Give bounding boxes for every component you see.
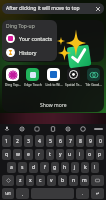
staticText: 4: [38, 138, 41, 145]
button[interactable]: v: [47, 175, 56, 186]
button[interactable]: 2: [13, 135, 22, 147]
button[interactable]: b: [58, 175, 67, 186]
button[interactable]: m: [80, 175, 89, 186]
staticText: Edge Touch: [24, 83, 42, 87]
staticText: b: [61, 177, 65, 184]
button[interactable]: i: [76, 149, 84, 160]
staticText: .: [82, 191, 84, 197]
button[interactable]: Emoji: [64, 125, 72, 133]
staticText: z: [19, 177, 22, 184]
staticText: ↵: [96, 191, 100, 196]
button[interactable]: 5: [46, 135, 54, 147]
button[interactable]: 6: [56, 135, 64, 147]
button[interactable]: p: [96, 149, 104, 160]
staticText: Spatial Te…: [65, 83, 82, 87]
staticText: g: [53, 164, 57, 171]
staticText: Show more: [40, 102, 67, 109]
button[interactable]: Show more: [2, 98, 104, 112]
button[interactable]: j: [71, 162, 79, 173]
button[interactable]: Tile Good…: [84, 68, 103, 87]
button[interactable]: 9: [86, 135, 94, 147]
staticText: u: [68, 151, 72, 158]
button[interactable]: Clipboard: [49, 125, 57, 133]
staticText: 7: [69, 138, 72, 145]
staticText: History: [19, 49, 37, 56]
staticText: l: [94, 164, 96, 171]
button[interactable]: d: [29, 162, 38, 173]
button[interactable]: Shift: [2, 175, 14, 186]
button[interactable]: 0: [96, 135, 104, 147]
staticText: 6: [59, 138, 62, 145]
button[interactable]: Link to Wi…: [44, 68, 63, 87]
button[interactable]: x: [26, 175, 34, 186]
button[interactable]: 4: [35, 135, 44, 147]
staticText: x: [29, 177, 32, 184]
button[interactable]: n: [69, 175, 78, 186]
button[interactable]: !#1: [2, 188, 14, 199]
staticText: ,: [22, 191, 24, 197]
button[interactable]: History: [2, 45, 57, 59]
button[interactable]: s: [18, 162, 27, 173]
button[interactable]: ,: [16, 188, 29, 199]
button[interactable]: .: [76, 188, 89, 199]
staticText: r: [38, 151, 41, 158]
staticText: After clicking it will move to top: [6, 5, 80, 12]
button[interactable]: 8: [76, 135, 84, 147]
button[interactable]: z: [16, 175, 24, 186]
staticText: c: [39, 177, 42, 184]
staticText: 1: [5, 138, 8, 145]
button[interactable]: w: [13, 149, 22, 160]
staticText: Ding Top-up: [6, 23, 35, 30]
button[interactable]: Backspace: [91, 175, 104, 186]
button[interactable]: After clicking it will move to top: [2, 3, 104, 14]
staticText: i: [79, 151, 81, 158]
button[interactable]: k: [81, 162, 89, 173]
staticText: f: [44, 164, 46, 171]
button[interactable]: u: [66, 149, 74, 160]
button[interactable]: Theme: [79, 125, 87, 133]
staticText: w: [16, 151, 20, 158]
staticText: j: [74, 164, 76, 171]
staticText: k: [84, 164, 87, 171]
button[interactable]: e: [24, 149, 33, 160]
staticText: s: [21, 164, 24, 171]
staticText: 0: [99, 138, 102, 145]
button[interactable]: Spatial Te…: [64, 68, 83, 87]
button[interactable]: Voice input: [3, 125, 11, 133]
staticText: q: [5, 151, 9, 158]
staticText: d: [32, 164, 36, 171]
staticText: h: [63, 164, 67, 171]
button[interactable]: Ding Top…: [3, 68, 22, 87]
staticText: v: [50, 177, 53, 184]
staticText: Tile Good…: [85, 83, 102, 87]
button[interactable]: Your contacts: [2, 31, 57, 45]
staticText: Link to Wi…: [45, 83, 63, 87]
staticText: o: [88, 151, 92, 158]
button[interactable]: h: [61, 162, 69, 173]
staticText: 3: [27, 138, 30, 145]
button[interactable]: 3: [24, 135, 33, 147]
button[interactable]: Close: [94, 5, 102, 13]
button[interactable]: Settings: [18, 125, 26, 133]
button[interactable]: c: [36, 175, 45, 186]
button[interactable]: g: [51, 162, 59, 173]
button[interactable]: 7: [66, 135, 74, 147]
staticText: 9: [89, 138, 92, 145]
button[interactable]: ↵: [91, 188, 104, 199]
button[interactable]: o: [86, 149, 94, 160]
button[interactable]: Sticker: [33, 125, 41, 133]
button[interactable]: r: [35, 149, 44, 160]
button[interactable]: l: [91, 162, 99, 173]
staticText: Your contacts: [19, 35, 52, 42]
button[interactable]: 1: [2, 135, 11, 147]
button[interactable]: f: [40, 162, 49, 173]
staticText: m: [82, 177, 87, 184]
button[interactable]: y: [56, 149, 64, 160]
staticText: 2: [16, 138, 19, 145]
button[interactable]: a: [7, 162, 16, 173]
button[interactable]: t: [46, 149, 54, 160]
button[interactable]: Edge Touch: [23, 68, 42, 87]
staticText: 8: [79, 138, 82, 145]
button[interactable]: q: [2, 149, 11, 160]
